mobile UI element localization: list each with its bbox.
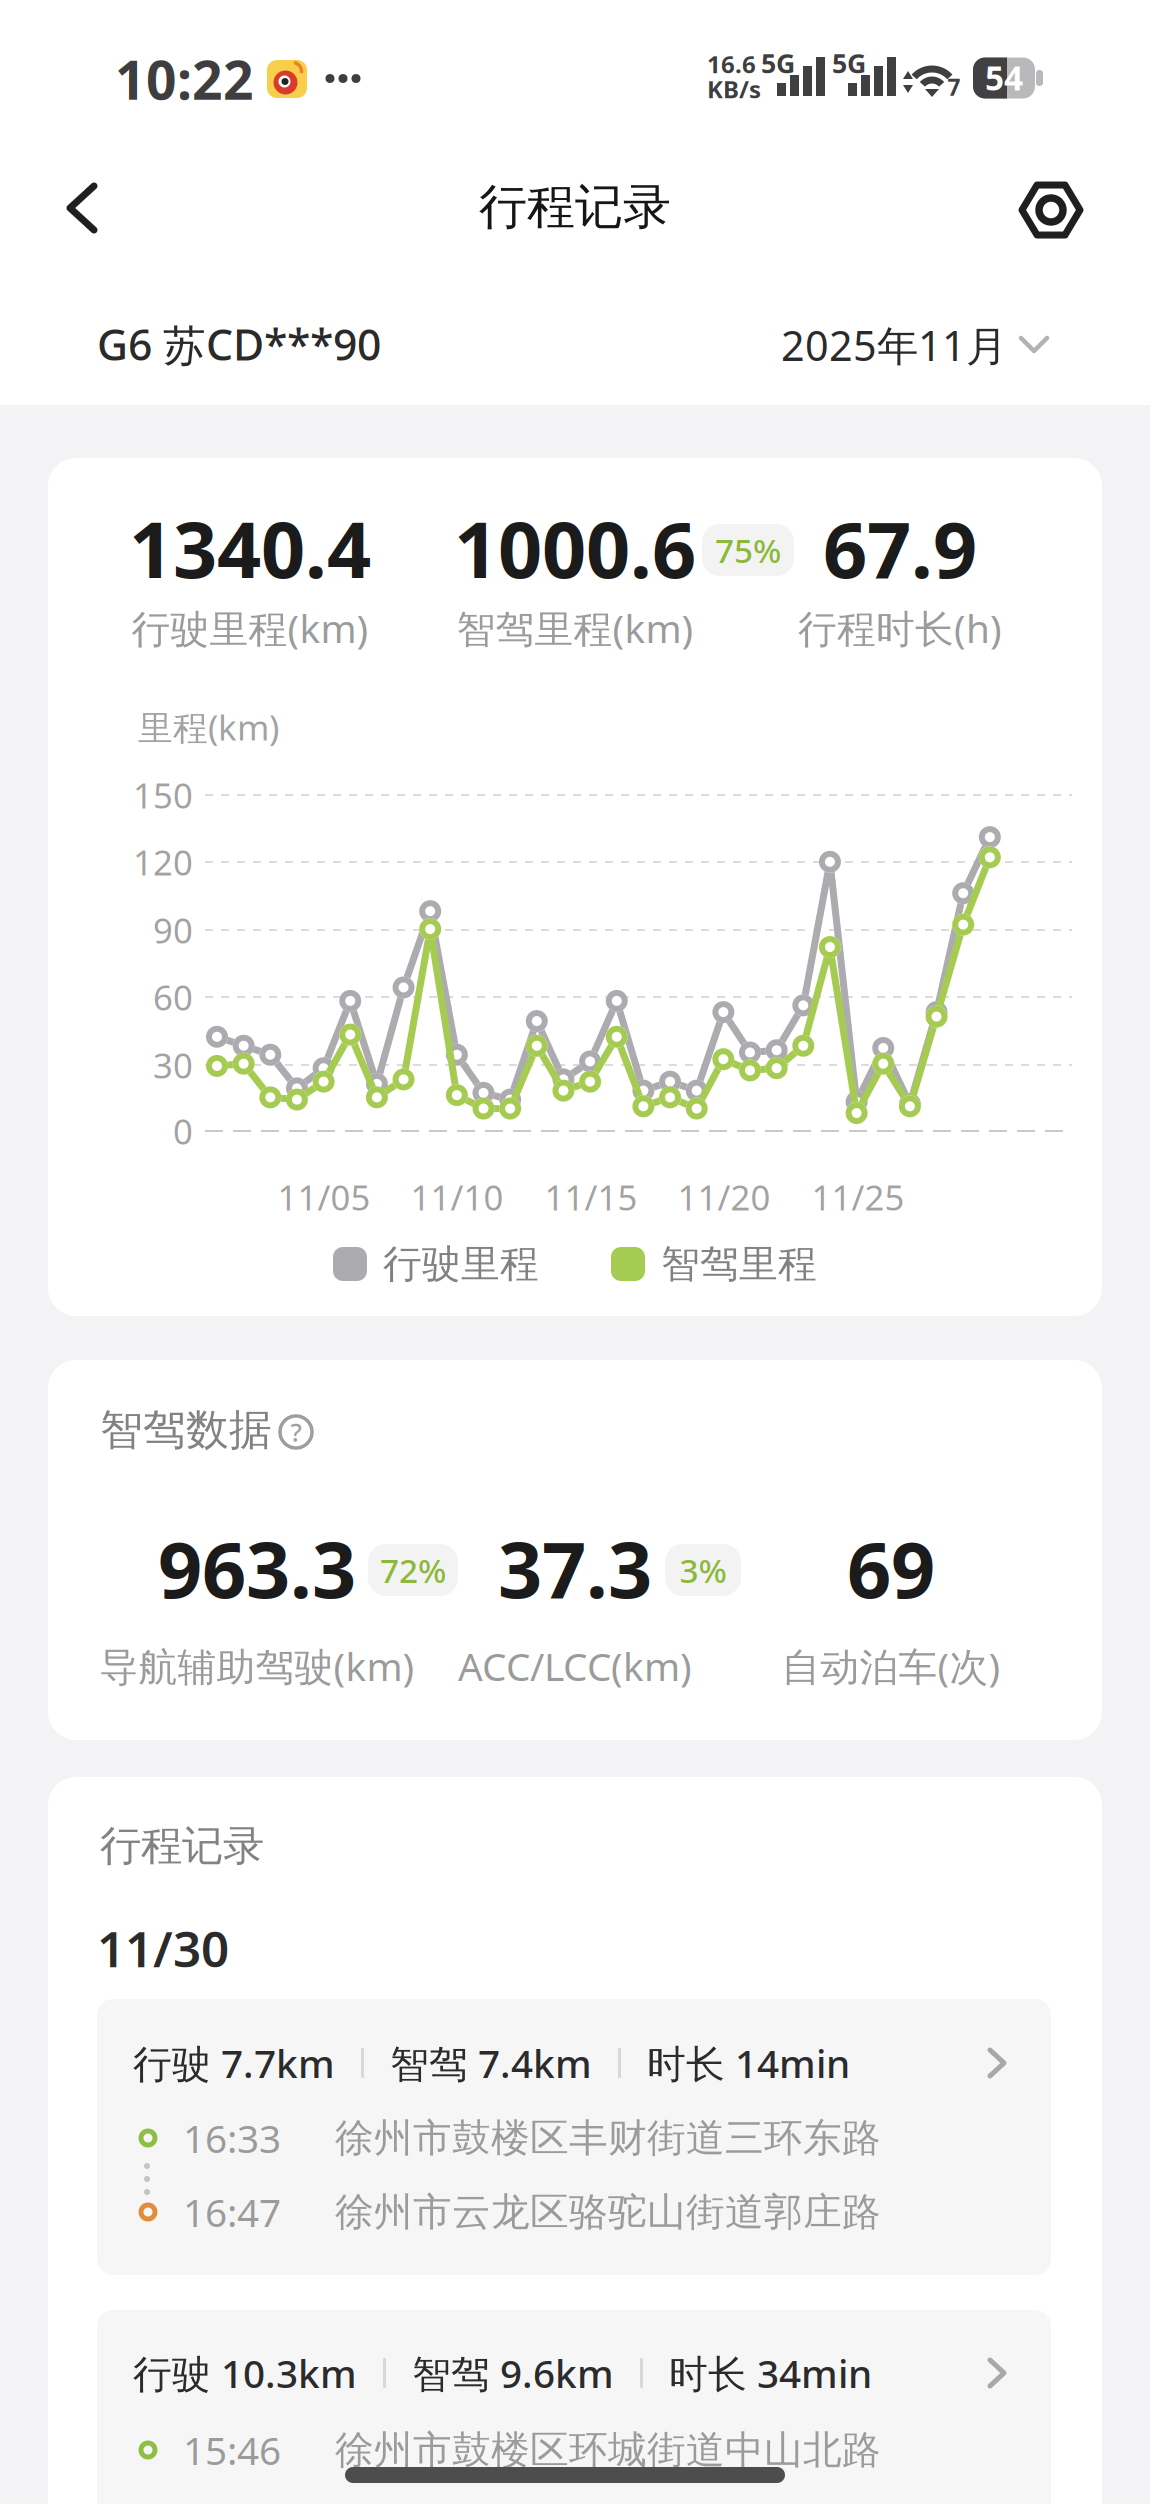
button[interactable]: 行驶 7.7km [97, 1999, 1051, 2275]
button[interactable]: Back [64, 180, 120, 236]
staticText: 150 [133, 772, 193, 818]
staticText: 智驾 7.4km [390, 2037, 592, 2089]
button[interactable]: 2025年11月 [781, 318, 1049, 372]
staticText: 行程时长(h) [798, 602, 1002, 654]
button[interactable]: Settings [1020, 181, 1082, 239]
staticText: 行驶里程(km) [131, 602, 368, 654]
staticText: 30 [153, 1042, 193, 1088]
staticText: 时长 14min [647, 2037, 850, 2089]
staticText: 3% [679, 1548, 726, 1592]
staticText: 5G [761, 45, 795, 81]
staticText: 37.3 [498, 1517, 652, 1619]
staticText: 16:33 [183, 2112, 281, 2164]
staticText: 11/20 [677, 1174, 770, 1220]
staticText: 10:22 [115, 44, 254, 114]
staticText: 徐州市云龙区骆驼山街道郭庄路 [335, 2188, 881, 2236]
staticText: 1000.6 [454, 497, 696, 599]
staticText: 徐州市鼓楼区丰财街道三环东路 [335, 2114, 881, 2162]
staticText: 智驾数据 [100, 1404, 272, 1456]
staticText: 15:46 [183, 2424, 281, 2476]
staticText: 90 [153, 907, 193, 953]
staticText: 11/15 [544, 1174, 637, 1220]
staticText: 69 [847, 1517, 935, 1619]
staticText: 智驾里程 [661, 1240, 817, 1288]
staticText: 行程记录 [100, 1821, 264, 1871]
staticText: 行驶里程 [383, 1240, 539, 1288]
staticText: 5G [832, 45, 866, 81]
staticText: 11/30 [97, 1915, 229, 1981]
staticText: ? [290, 1415, 301, 1449]
staticText: 1340.4 [129, 497, 371, 599]
staticText: 徐州市鼓楼区环城街道中山北路 [335, 2426, 881, 2474]
staticText: 16:47 [183, 2186, 281, 2238]
staticText: 0 [173, 1108, 193, 1154]
staticText: 11/10 [410, 1174, 503, 1220]
staticText: 67.9 [823, 497, 977, 599]
staticText: 16.6 [707, 48, 756, 80]
staticText: 智驾 9.6km [412, 2347, 614, 2399]
staticText: 60 [153, 974, 193, 1020]
staticText: 120 [133, 839, 193, 885]
staticText: 2025年11月 [781, 318, 1007, 372]
staticText: 7 [947, 72, 960, 102]
staticText: 11/25 [811, 1174, 904, 1220]
button[interactable]: G6 苏CD***90 [97, 316, 557, 372]
staticText: 智驾里程(km) [456, 602, 693, 654]
staticText: 11/05 [277, 1174, 370, 1220]
button[interactable]: 行驶 10.3km [97, 2310, 1051, 2504]
staticText: 时长 34min [669, 2347, 872, 2399]
staticText: 导航辅助驾驶(km) [99, 1640, 414, 1692]
staticText: KB/s [707, 73, 761, 105]
staticText: 行驶 7.7km [133, 2037, 335, 2089]
button[interactable]: Help [278, 1414, 314, 1450]
staticText: 行程记录 [479, 177, 671, 236]
staticText: G6 苏CD***90 [97, 316, 381, 372]
staticText: ACC/LCC(km) [458, 1640, 692, 1692]
staticText: 54 [985, 55, 1023, 100]
staticText: 自动泊车(次) [781, 1640, 1000, 1692]
staticText: 72% [380, 1548, 446, 1592]
staticText: 75% [715, 528, 781, 572]
staticText: 里程(km) [138, 704, 279, 750]
staticText: 行驶 10.3km [133, 2347, 357, 2399]
staticText: 963.3 [158, 1517, 356, 1619]
